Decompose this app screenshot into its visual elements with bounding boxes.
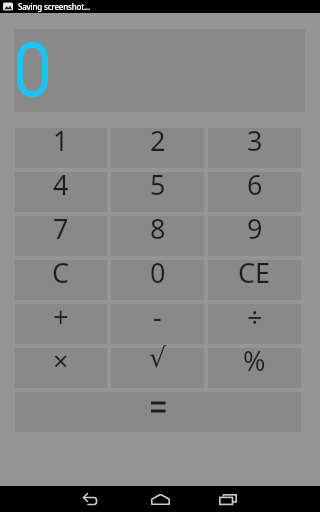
button[interactable]: C xyxy=(15,260,107,300)
button[interactable]: × xyxy=(15,348,107,388)
staticText: Saving screenshot... xyxy=(18,1,91,12)
button[interactable]: 0 xyxy=(111,260,204,300)
staticText: 8 xyxy=(150,210,166,247)
staticText: - xyxy=(153,298,162,335)
staticText: CE xyxy=(238,254,271,291)
button[interactable]: 4 xyxy=(15,172,107,212)
staticText: 5 xyxy=(150,166,166,203)
staticText: % xyxy=(243,342,266,379)
button[interactable]: 7 xyxy=(15,216,107,256)
button[interactable]: √ xyxy=(111,348,204,388)
button[interactable]: 1 xyxy=(15,128,107,168)
button[interactable]: 5 xyxy=(111,172,204,212)
staticText: 4 xyxy=(53,166,69,203)
staticText: 0 xyxy=(150,254,166,291)
button[interactable]: 2 xyxy=(111,128,204,168)
staticText: 1 xyxy=(53,122,69,159)
button[interactable] xyxy=(15,392,301,432)
button[interactable]: 8 xyxy=(111,216,204,256)
staticText: 7 xyxy=(53,210,69,247)
button[interactable]: 6 xyxy=(208,172,301,212)
staticText: 3 xyxy=(247,122,263,159)
button[interactable]: % xyxy=(208,348,301,388)
staticText: × xyxy=(53,342,69,379)
button[interactable] xyxy=(204,486,252,512)
button[interactable]: - xyxy=(111,304,204,344)
staticText: 9 xyxy=(247,210,263,247)
button[interactable]: 9 xyxy=(208,216,301,256)
button[interactable] xyxy=(68,486,116,512)
staticText: C xyxy=(52,254,70,291)
staticText: 6 xyxy=(247,166,263,203)
staticText: + xyxy=(53,298,69,335)
staticText: 2 xyxy=(150,122,166,159)
button[interactable]: 3 xyxy=(208,128,301,168)
button[interactable]: CE xyxy=(208,260,301,300)
button[interactable]: + xyxy=(15,304,107,344)
button[interactable] xyxy=(136,486,184,512)
button[interactable]: ÷ xyxy=(208,304,301,344)
staticText: ÷ xyxy=(247,298,263,335)
staticText: √ xyxy=(149,342,167,373)
